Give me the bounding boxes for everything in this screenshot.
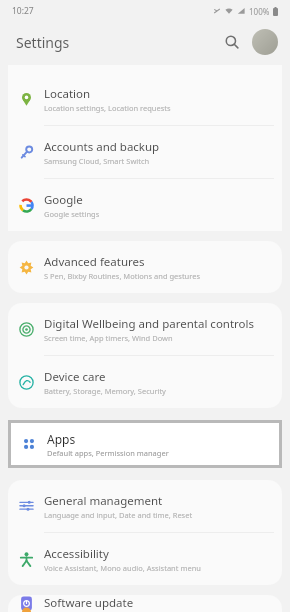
staticText: Location — [44, 86, 91, 102]
staticText: Google settings — [44, 209, 100, 219]
staticText: 100% — [249, 6, 270, 17]
staticText: Screen time, App timers, Wind Down — [44, 333, 173, 343]
button[interactable]: Accessibility — [8, 533, 282, 585]
staticText: Software update — [44, 595, 134, 611]
button[interactable]: Apps — [11, 423, 279, 465]
staticText: Google — [44, 192, 83, 208]
button[interactable]: Google — [8, 179, 282, 231]
staticText: Accounts and backup — [44, 139, 160, 155]
button[interactable]: Location — [8, 73, 282, 125]
staticText: Samsung Cloud, Smart Switch — [44, 156, 150, 166]
staticText: Settings — [16, 33, 70, 52]
staticText: Language and input, Date and time, Reset — [44, 510, 193, 520]
button[interactable]: Software update — [8, 595, 282, 612]
button[interactable]: Advanced features — [8, 241, 282, 293]
staticText: 10:27 — [12, 5, 34, 17]
button[interactable]: Accounts and backup — [8, 126, 282, 178]
button[interactable]: Digital Wellbeing and parental controls — [8, 303, 282, 355]
staticText: Device care — [44, 369, 106, 385]
button[interactable]: Device care — [8, 356, 282, 408]
staticText: Voice Assistant, Mono audio, Assistant m… — [44, 563, 201, 573]
staticText: Advanced features — [44, 254, 145, 270]
staticText: S Pen, Bixby Routines, Motions and gestu… — [44, 271, 200, 281]
staticText: Digital Wellbeing and parental controls — [44, 316, 255, 332]
staticText: Apps — [47, 431, 76, 447]
button[interactable]: Search — [218, 28, 246, 56]
button[interactable]: Account — [252, 29, 278, 55]
button[interactable]: General management — [8, 480, 282, 532]
staticText: Default apps, Permission manager — [47, 448, 169, 458]
staticText: Accessibility — [44, 546, 109, 562]
staticText: General management — [44, 493, 163, 509]
staticText: Battery, Storage, Memory, Security — [44, 386, 166, 396]
staticText: Location settings, Location requests — [44, 103, 171, 113]
